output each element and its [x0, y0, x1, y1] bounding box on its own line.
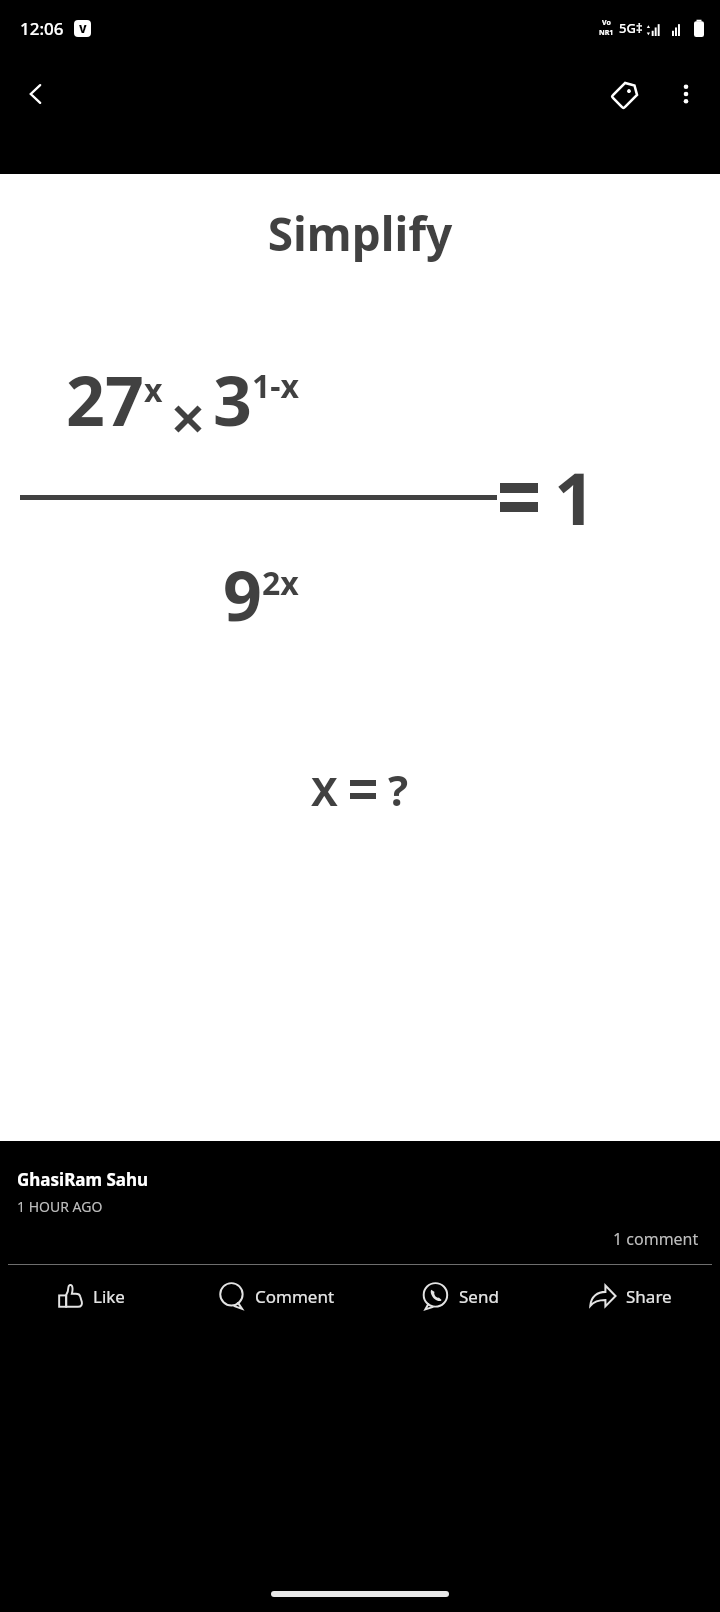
staticText: 12:06 [20, 17, 64, 40]
staticText: ? [388, 761, 409, 818]
button[interactable]: Comment [176, 1265, 376, 1327]
staticText: 27 [66, 353, 144, 446]
staticText: 1 [554, 448, 596, 546]
staticText: 9 [223, 548, 262, 641]
staticText: V [79, 21, 87, 36]
staticText: 5G‡ [619, 19, 643, 37]
staticText: Vo [602, 18, 611, 28]
staticText: Share [626, 1285, 672, 1308]
staticText: NR1 [599, 28, 614, 38]
button[interactable]: Share [545, 1265, 714, 1327]
button[interactable]: Like [6, 1265, 176, 1327]
button[interactable]: Tag [600, 68, 652, 120]
staticText: 1-x [252, 364, 300, 408]
staticText: Simplify [0, 202, 720, 265]
staticText: x [144, 368, 163, 412]
staticText: 1 comment [613, 1228, 699, 1250]
button[interactable]: 1 comment [609, 1224, 703, 1254]
button[interactable]: More options [662, 70, 710, 118]
staticText: 2x [262, 561, 299, 605]
staticText: X [311, 763, 338, 817]
button[interactable]: Back [8, 66, 64, 122]
button[interactable]: Send [376, 1265, 545, 1327]
staticText: Like [93, 1285, 125, 1308]
staticText: 1 HOUR AGO [17, 1197, 103, 1216]
staticText: GhasiRam Sahu [17, 1168, 149, 1191]
staticText: Comment [255, 1285, 335, 1308]
staticText: 3 [213, 353, 252, 446]
staticText: Send [459, 1285, 499, 1308]
